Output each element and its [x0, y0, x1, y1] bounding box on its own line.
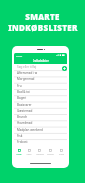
- button[interactable]: Fisk: [14, 133, 67, 139]
- staticText: Aftensmad i w: [17, 71, 38, 75]
- staticText: Hovedmad: [17, 121, 33, 125]
- staticText: Søg eller tilføj: [17, 65, 37, 69]
- button[interactable]: Bad & toi: [14, 89, 67, 95]
- staticText: Favorit: [47, 153, 54, 156]
- button[interactable]: Morgenmad: [14, 76, 67, 82]
- staticText: Basisvarer: [17, 103, 32, 107]
- staticText: INDKØBSLISTER: [8, 22, 78, 33]
- staticText: Bageri: [17, 96, 27, 100]
- staticText: Varer: [26, 153, 32, 156]
- button[interactable]: Brunch: [14, 114, 67, 120]
- staticText: Lister: [16, 153, 22, 156]
- button[interactable]: Lister: [14, 145, 24, 159]
- staticText: Gæstemad: [17, 109, 33, 113]
- button[interactable]: Aftensmad i w: [14, 70, 67, 76]
- button[interactable]: Bageri: [14, 95, 67, 101]
- staticText: Morgenmad: [17, 77, 35, 81]
- button[interactable]: Hovedmad: [14, 120, 67, 126]
- button[interactable]: Fru: [14, 83, 67, 89]
- staticText: Madplan weekend: [17, 128, 43, 132]
- button[interactable]: Gæstemad: [14, 108, 67, 114]
- button[interactable]: Opskrift: [34, 145, 45, 159]
- button[interactable]: Varer: [24, 145, 34, 159]
- button[interactable]: Favorit: [45, 145, 56, 159]
- staticText: Opskrift: [36, 153, 44, 156]
- button[interactable]: Søg eller tilføj: [14, 64, 67, 70]
- button[interactable]: Profil: [56, 145, 67, 159]
- staticText: Fru: [17, 84, 22, 88]
- staticText: Brunch: [17, 115, 28, 119]
- staticText: Bad & toi: [17, 90, 30, 94]
- staticText: Profil: [59, 153, 64, 156]
- button[interactable]: Frokost: [14, 139, 67, 145]
- staticText: Fisk: [17, 134, 23, 138]
- staticText: Indkøbslister: [33, 59, 49, 62]
- staticText: SMARTE: [25, 11, 60, 22]
- button[interactable]: Basisvarer: [14, 102, 67, 108]
- button[interactable]: Tilføj liste: [62, 66, 67, 71]
- staticText: Frokost: [17, 140, 28, 144]
- button[interactable]: Madplan weekend: [14, 127, 67, 133]
- staticText: 10:24: [16, 54, 23, 57]
